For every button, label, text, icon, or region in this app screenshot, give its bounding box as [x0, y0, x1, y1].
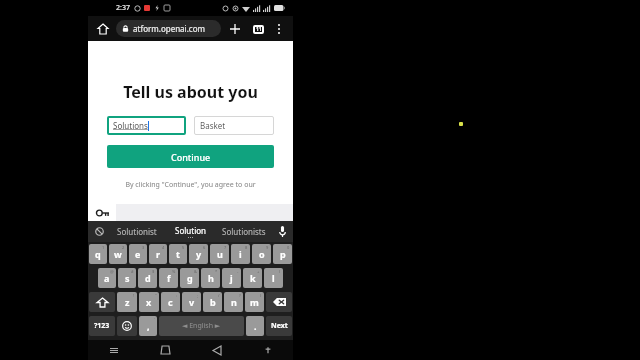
button[interactable]: q [89, 244, 107, 264]
staticText: + [257, 269, 260, 274]
button[interactable]: , [139, 316, 157, 336]
staticText: ! [133, 293, 135, 298]
button[interactable]: p [273, 244, 292, 264]
button[interactable]: e [129, 244, 147, 264]
staticText: / [218, 293, 220, 298]
staticText: By clicking "Continue", you agree to our [88, 180, 293, 190]
staticText: p [280, 248, 286, 260]
staticText: ( [279, 269, 281, 274]
button[interactable]: y [189, 244, 208, 264]
button[interactable]: Solutionists [217, 221, 271, 242]
button[interactable]: Tabs [248, 19, 268, 39]
button[interactable]: Recent apps [88, 340, 140, 360]
staticText: 5 [182, 245, 185, 250]
staticText: Continue [171, 151, 211, 163]
button[interactable]: r [149, 244, 167, 264]
staticText: * [215, 269, 218, 274]
staticText: 11 [256, 26, 262, 33]
staticText: i [239, 248, 242, 260]
button[interactable]: ?123 [89, 316, 115, 336]
button[interactable]: . [246, 316, 264, 336]
button[interactable]: b [203, 292, 222, 312]
staticText: b [210, 296, 216, 308]
button[interactable]: w [109, 244, 127, 264]
staticText: l [272, 272, 275, 284]
staticText: y [196, 248, 202, 260]
staticText: Solutions [113, 120, 148, 131]
staticText: t [176, 248, 180, 260]
staticText: ; [197, 293, 199, 298]
staticText: j [230, 272, 233, 284]
button[interactable]: u [210, 244, 229, 264]
button[interactable]: New tab [225, 19, 245, 39]
staticText: v [189, 296, 195, 308]
button[interactable]: x [139, 292, 159, 312]
button[interactable]: Home [93, 19, 113, 39]
staticText: Basket [200, 120, 226, 131]
staticText: Next [271, 321, 288, 331]
button[interactable]: ◄ English ► [159, 316, 244, 336]
staticText: ?123 [94, 321, 110, 331]
button[interactable]: v [182, 292, 201, 312]
button[interactable]: Basket [194, 116, 274, 135]
staticText: % [172, 269, 176, 274]
staticText: x [146, 296, 152, 308]
button[interactable]: f [159, 268, 178, 288]
staticText: - [237, 269, 239, 274]
staticText: e [135, 248, 141, 260]
staticText: q [95, 248, 101, 260]
staticText: $ [152, 269, 155, 274]
button[interactable]: t [169, 244, 187, 264]
button[interactable]: z [117, 292, 137, 312]
button[interactable]: o [252, 244, 271, 264]
button[interactable]: Solution [163, 221, 217, 242]
button[interactable]: j [222, 268, 241, 288]
button[interactable]: Next [266, 316, 292, 336]
button[interactable]: Shift [89, 292, 115, 312]
staticText: 4 [162, 245, 165, 250]
staticText: ) [260, 293, 262, 298]
button[interactable]: Voice typing toggle [88, 221, 110, 242]
staticText: ' [154, 317, 155, 322]
button[interactable]: h [201, 268, 220, 288]
button[interactable]: a [98, 268, 116, 288]
button[interactable]: Voice input [271, 221, 293, 242]
button[interactable]: m [245, 292, 264, 312]
staticText: n [231, 296, 237, 308]
staticText: z [125, 296, 130, 308]
button[interactable]: n [224, 292, 243, 312]
button[interactable]: Emoji [117, 316, 137, 336]
staticText: g [187, 272, 193, 284]
staticText: @ [110, 269, 114, 274]
staticText: 2 [122, 245, 125, 250]
staticText: # [131, 269, 134, 274]
button[interactable]: Home [140, 340, 191, 360]
button[interactable]: i [231, 244, 250, 264]
button[interactable]: c [161, 292, 180, 312]
button[interactable]: l [264, 268, 283, 288]
button[interactable]: atform.openai.com [116, 20, 221, 37]
button[interactable]: Back [191, 340, 242, 360]
button[interactable]: Solutionist [110, 221, 163, 242]
staticText: a [104, 272, 110, 284]
staticText: u [217, 248, 223, 260]
button[interactable]: Backspace [266, 292, 292, 312]
button[interactable]: d [138, 268, 157, 288]
staticText: f [167, 272, 171, 284]
button[interactable]: Continue [107, 145, 274, 168]
staticText: 0 [287, 245, 290, 250]
button[interactable]: Keyboard dismiss [242, 340, 293, 360]
button[interactable]: More options [270, 20, 288, 38]
button[interactable]: s [118, 268, 136, 288]
staticText: Solutionist [117, 226, 157, 237]
staticText: k [250, 272, 256, 284]
staticText: h [208, 272, 214, 284]
staticText: o [259, 248, 265, 260]
button[interactable]: Password autofill [88, 204, 116, 221]
staticText: 6 [203, 245, 206, 250]
button[interactable]: g [180, 268, 199, 288]
button[interactable]: Solutions [107, 116, 186, 135]
button[interactable]: k [243, 268, 262, 288]
staticText: s [125, 272, 130, 284]
staticText: 3 [142, 245, 145, 250]
